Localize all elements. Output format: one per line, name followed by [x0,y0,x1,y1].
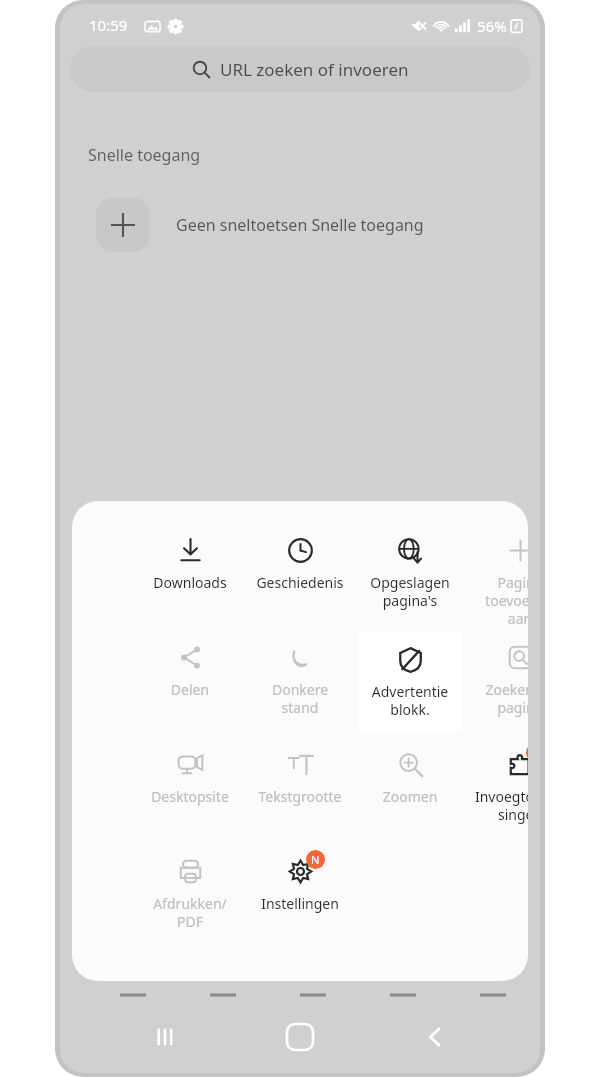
staticText: Opgeslagen pagina's [362,573,458,610]
staticText: Downloads [142,573,238,592]
button[interactable]: Zoeken op pagina [465,630,528,734]
staticText: Afdrukken/ PDF [142,894,238,931]
button[interactable]: Tekstgrootte [245,737,355,841]
staticText: URL zoeken of invoeren [220,58,409,81]
button[interactable]: Afdrukken/ PDF [135,844,245,948]
button[interactable]: Sneltoets toevoegen [96,198,424,252]
button[interactable]: Desktopsite [135,737,245,841]
staticText: Zoomen [362,787,458,806]
staticText: Donkere stand [252,680,348,717]
staticText: Snelle toegang [88,144,201,166]
other: Sneltoets toevoegen [96,198,150,252]
staticText: Geen sneltoetsen Snelle toegang [176,214,424,236]
staticText: Tekstgrootte [252,787,348,806]
button[interactable]: Recente apps [135,1007,195,1067]
button[interactable]: Terug [405,1007,465,1067]
staticText: Advertentie blokk. [362,682,458,719]
button[interactable]: Zoomen [355,737,465,841]
staticText: Zoeken op pagina [472,680,528,717]
staticText: Desktopsite [142,787,238,806]
staticText: Instellingen [252,894,348,913]
staticText: N [311,852,320,867]
button[interactable]: Opgeslagen pagina's [355,523,465,627]
button[interactable]: Advertentie blokk. [358,632,462,732]
staticText: Geschiedenis [252,573,348,592]
staticText: Invoegtoepassingen [472,787,528,824]
staticText: Delen [142,680,238,699]
button[interactable]: Downloads [135,523,245,627]
button[interactable]: Delen [135,630,245,734]
button[interactable]: Geschiedenis [245,523,355,627]
button[interactable]: URL zoeken of invoeren [70,46,530,92]
staticText: 10:59 [89,15,128,35]
button[interactable]: N [465,737,528,841]
button[interactable]: N [245,844,355,948]
staticText: Pagina toevoegen aan [472,573,528,627]
button[interactable]: Pagina toevoegen aan [465,523,528,627]
staticText: 56% [477,16,507,36]
button[interactable]: Home [270,1007,330,1067]
button[interactable]: Donkere stand [245,630,355,734]
